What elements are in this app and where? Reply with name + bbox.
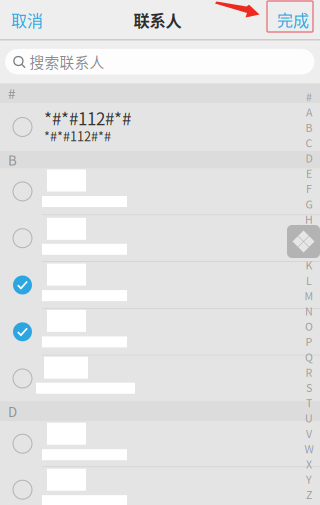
staticText: *#*#112#*# [44, 106, 131, 130]
staticText: L [306, 272, 312, 288]
staticText: Z [306, 487, 312, 502]
staticText: B [8, 150, 17, 169]
button[interactable] [0, 262, 320, 308]
button[interactable] [0, 421, 320, 466]
staticText: W [304, 441, 313, 456]
button[interactable]: Section index [299, 89, 319, 502]
staticText: K [305, 257, 312, 273]
staticText: I [307, 227, 310, 242]
staticText: B [305, 119, 312, 135]
staticText: P [305, 334, 312, 349]
staticText: H [305, 211, 313, 227]
staticText: *#*#112#*# [44, 127, 111, 145]
staticText: E [306, 165, 312, 181]
button[interactable] [0, 215, 320, 261]
staticText: A [306, 104, 312, 120]
staticText: T [306, 395, 312, 410]
staticText: O [305, 318, 313, 334]
button[interactable]: 取消 [0, 0, 55, 39]
button[interactable] [0, 467, 320, 505]
staticText: J [306, 242, 312, 257]
staticText: 完成 [277, 8, 309, 31]
staticText: Y [306, 471, 312, 487]
staticText: 取消 [11, 8, 43, 31]
button[interactable] [0, 168, 320, 214]
staticText: M [304, 288, 313, 303]
button[interactable]: *#*#112#*# [0, 103, 320, 151]
staticText: 联系人 [133, 8, 181, 32]
staticText: N [305, 303, 313, 318]
staticText: # [8, 84, 15, 103]
staticText: C [305, 135, 312, 150]
staticText: 搜索联系人 [29, 51, 104, 72]
staticText: S [306, 380, 312, 395]
button[interactable] [0, 356, 320, 401]
button[interactable]: 搜索联系人 [5, 49, 314, 74]
staticText: V [306, 425, 312, 441]
staticText: D [8, 401, 17, 421]
staticText: X [306, 456, 312, 471]
staticText: D [305, 150, 312, 165]
staticText: Q [305, 349, 313, 364]
staticText: G [305, 196, 312, 211]
button[interactable] [0, 309, 320, 355]
staticText: F [306, 181, 312, 196]
staticText: U [305, 410, 313, 426]
staticText: R [305, 364, 312, 380]
button[interactable]: 完成 [267, 0, 320, 39]
staticText: # [306, 89, 312, 104]
